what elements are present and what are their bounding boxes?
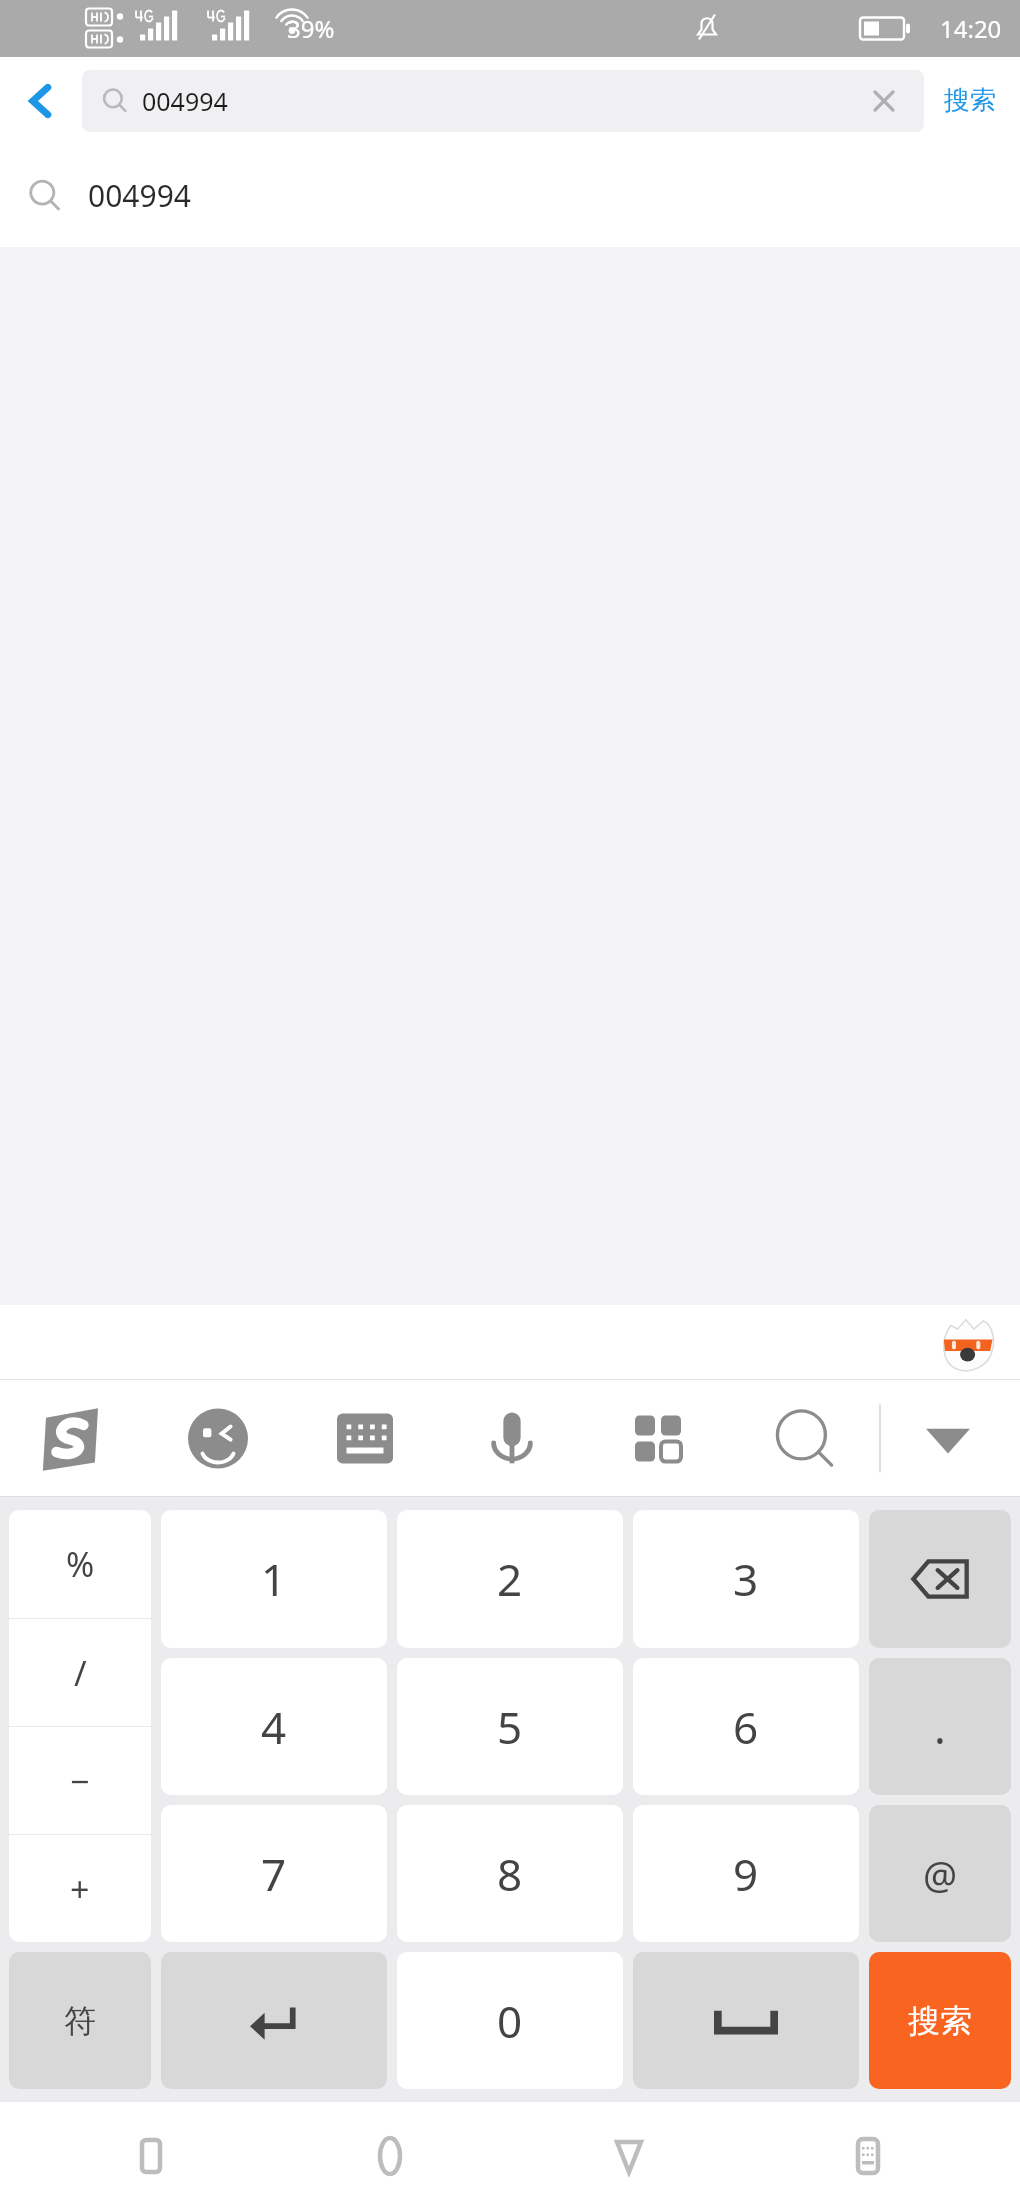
button[interactable]: Keyboard xyxy=(813,2102,923,2210)
button[interactable]: Space xyxy=(633,1952,859,2089)
button[interactable]: Delete xyxy=(869,1510,1011,1648)
staticText: 搜索 xyxy=(908,2001,972,2041)
staticText: − xyxy=(70,1758,90,1804)
staticText: % xyxy=(66,1541,95,1587)
button[interactable]: 8 xyxy=(397,1805,623,1942)
button[interactable]: Back xyxy=(574,2102,684,2210)
button[interactable]: 0 xyxy=(397,1952,623,2089)
staticText: 004994 xyxy=(142,84,228,118)
staticText: 符 xyxy=(64,2001,96,2041)
button[interactable]: Assistant xyxy=(938,1314,996,1372)
staticText: 7 xyxy=(261,1844,287,1904)
button[interactable]: 4 xyxy=(161,1658,387,1795)
staticText: 4 xyxy=(261,1697,287,1757)
staticText: 2 xyxy=(497,1549,523,1609)
staticText: 3 xyxy=(733,1549,759,1609)
button[interactable]: % xyxy=(9,1510,151,1618)
staticText: + xyxy=(70,1866,90,1912)
staticText: 004994 xyxy=(88,175,191,216)
button[interactable]: 符 xyxy=(9,1952,151,2089)
button[interactable]: 6 xyxy=(633,1658,859,1795)
staticText: 搜索 xyxy=(944,84,996,117)
button[interactable]: 5 xyxy=(397,1658,623,1795)
staticText: 8 xyxy=(497,1844,523,1904)
button[interactable]: 9 xyxy=(633,1805,859,1942)
staticText: 5 xyxy=(497,1697,523,1757)
button[interactable]: 搜索 xyxy=(938,76,1002,125)
button[interactable]: 7 xyxy=(161,1805,387,1942)
staticText: 0 xyxy=(497,1991,523,2051)
staticText: / xyxy=(74,1650,87,1696)
button[interactable]: / xyxy=(9,1619,151,1726)
staticText: . xyxy=(934,1697,946,1757)
button[interactable]: 1 xyxy=(161,1510,387,1648)
button[interactable]: . xyxy=(869,1658,1011,1795)
staticText: @ xyxy=(923,1848,958,1900)
staticText: 14:20 xyxy=(940,12,1002,45)
staticText: 39% xyxy=(287,12,335,45)
button[interactable]: Back xyxy=(12,72,70,130)
button[interactable]: 004994 xyxy=(0,144,1020,247)
button[interactable]: Recents xyxy=(96,2102,206,2210)
button[interactable]: 搜索 xyxy=(869,1952,1011,2089)
staticText: 6 xyxy=(733,1697,759,1757)
button[interactable]: Return xyxy=(161,1952,387,2089)
button[interactable]: Home xyxy=(335,2102,445,2210)
button[interactable]: 004994 xyxy=(82,70,924,132)
button[interactable]: Clear xyxy=(864,81,904,121)
button[interactable]: 3 xyxy=(633,1510,859,1648)
staticText: 9 xyxy=(733,1844,759,1904)
button[interactable]: − xyxy=(9,1727,151,1834)
staticText: 1 xyxy=(261,1549,287,1609)
button[interactable]: @ xyxy=(869,1805,1011,1942)
button[interactable]: + xyxy=(9,1835,151,1942)
button[interactable]: 2 xyxy=(397,1510,623,1648)
